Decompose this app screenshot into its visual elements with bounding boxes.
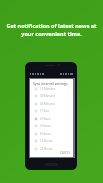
button[interactable]: 1 Hour: [30, 107, 73, 115]
staticText: 3 Hours: [40, 124, 51, 128]
staticText: 2 Hours: [40, 117, 51, 121]
button[interactable]: 12 Hours: [30, 137, 73, 145]
staticText: 1 Hour: [40, 109, 50, 113]
staticText: 24 Hours: [40, 147, 53, 151]
button[interactable]: 3 Hours: [30, 122, 73, 130]
staticText: 12 Hours: [40, 139, 53, 143]
staticText: 30 Minutes: [40, 94, 56, 98]
button[interactable]: 45 Minutes: [30, 100, 73, 108]
button[interactable]: 2 Hours: [30, 115, 73, 123]
button[interactable]: CANCEL: [60, 151, 71, 155]
staticText: 15 Minutes: [40, 87, 56, 91]
button[interactable]: 15 Minutes: [30, 85, 73, 93]
staticText: CANCEL: [60, 151, 71, 155]
button[interactable]: 24 Hours: [30, 145, 73, 153]
staticText: 45 Minutes: [40, 102, 56, 106]
button[interactable]: 30 Minutes: [30, 92, 73, 100]
staticText: 6 Hours: [40, 132, 51, 136]
staticText: Sync interval settings: [33, 81, 68, 86]
staticText: Get notification of latest news at your …: [2, 22, 101, 38]
button[interactable]: 6 Hours: [30, 130, 73, 138]
